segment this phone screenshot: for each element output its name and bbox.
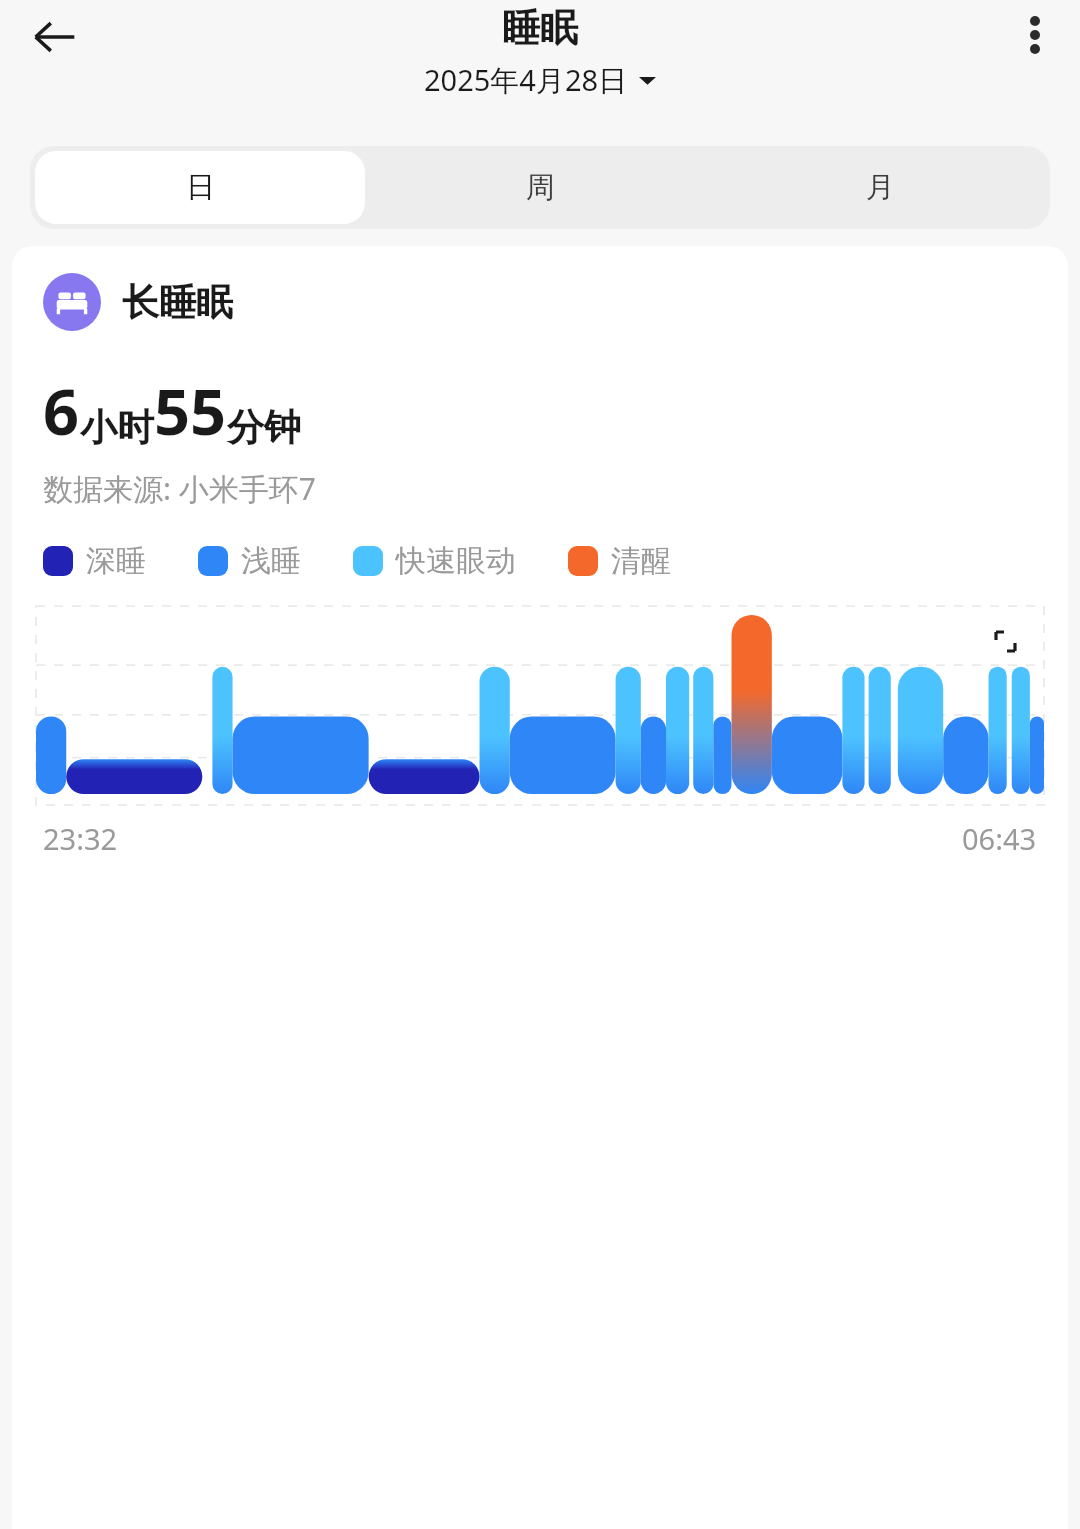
staticText: 55 xyxy=(154,368,227,454)
staticText: 浅睡 xyxy=(241,542,301,580)
button[interactable]: 浅睡 xyxy=(198,542,301,580)
staticText: 快速眼动 xyxy=(396,542,516,580)
button[interactable]: Expand chart xyxy=(984,620,1026,662)
button[interactable]: 月 xyxy=(715,151,1045,224)
button[interactable]: 日 xyxy=(35,151,365,224)
button[interactable]: 清醒 xyxy=(568,542,671,580)
button[interactable]: Back xyxy=(24,6,86,68)
staticText: 周 xyxy=(526,169,555,206)
staticText: 06:43 xyxy=(962,819,1037,858)
staticText: 长睡眠 xyxy=(122,279,233,326)
button[interactable]: 快速眼动 xyxy=(353,542,516,580)
button[interactable]: 2025年4月28日 xyxy=(418,58,662,102)
staticText: 2025年4月28日 xyxy=(424,60,628,100)
staticText: 6 xyxy=(43,368,80,454)
button[interactable]: More options xyxy=(1006,6,1064,64)
staticText: 分钟 xyxy=(227,404,301,451)
staticText: 月 xyxy=(866,169,895,206)
button[interactable]: 周 xyxy=(375,151,705,224)
staticText: 清醒 xyxy=(611,542,671,580)
button[interactable]: 长睡眠 xyxy=(43,273,247,331)
staticText: 日 xyxy=(186,169,215,206)
staticText: 数据来源: 小米手环7 xyxy=(43,468,316,509)
staticText: 小时 xyxy=(80,404,154,451)
button[interactable]: 深睡 xyxy=(43,542,146,580)
staticText: 23:32 xyxy=(43,819,118,858)
staticText: 深睡 xyxy=(86,542,146,580)
staticText: 睡眠 xyxy=(502,4,578,52)
